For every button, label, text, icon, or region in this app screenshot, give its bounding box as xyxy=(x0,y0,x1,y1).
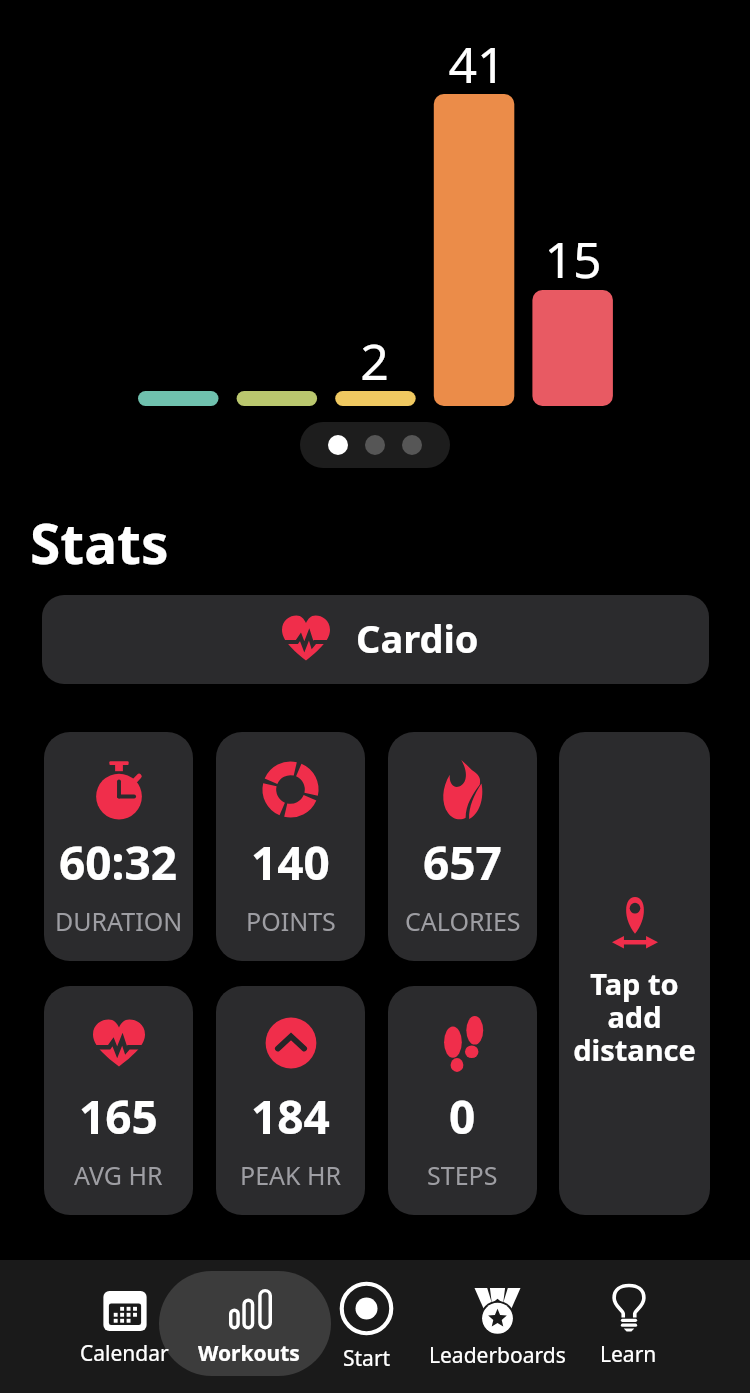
button[interactable]: Start xyxy=(276,1271,456,1376)
staticText: DURATION xyxy=(55,904,183,938)
staticText: POINTS xyxy=(246,904,336,938)
button[interactable]: Workouts xyxy=(159,1271,339,1376)
button[interactable]: 657 xyxy=(388,732,537,961)
staticText: Learn xyxy=(600,1340,657,1369)
staticText: Calendar xyxy=(80,1339,169,1368)
staticText: 165 xyxy=(79,1085,158,1148)
button[interactable]: 184 xyxy=(216,986,365,1215)
button[interactable]: Cardio xyxy=(42,595,709,684)
button[interactable]: 0 xyxy=(388,986,537,1215)
staticText: 15 xyxy=(544,225,602,293)
staticText: CALORIES xyxy=(405,904,521,938)
button[interactable]: 60:32 xyxy=(44,732,193,961)
staticText: Stats xyxy=(30,505,169,580)
button[interactable]: Calendar xyxy=(34,1271,214,1376)
staticText: Workouts xyxy=(198,1339,300,1368)
staticText: 41 xyxy=(448,30,506,98)
button[interactable]: 140 xyxy=(216,732,365,961)
staticText: Leaderboards xyxy=(429,1341,566,1370)
staticText: 657 xyxy=(423,831,502,894)
staticText: Tap to add distance xyxy=(573,964,696,1069)
staticText: Cardio xyxy=(356,612,479,664)
staticText: PEAK HR xyxy=(240,1158,342,1192)
staticText: AVG HR xyxy=(74,1158,163,1192)
button[interactable]: 165 xyxy=(44,986,193,1215)
staticText: Start xyxy=(343,1344,391,1373)
staticText: 184 xyxy=(251,1085,330,1148)
button[interactable]: Leaderboards xyxy=(407,1271,587,1376)
staticText: 60:32 xyxy=(59,831,178,894)
staticText: 2 xyxy=(360,327,389,395)
staticText: STEPS xyxy=(427,1158,498,1192)
button[interactable]: Page indicator xyxy=(300,422,450,468)
staticText: 0 xyxy=(449,1085,476,1148)
button[interactable]: Learn xyxy=(538,1271,718,1376)
button[interactable]: Tap to add distance xyxy=(559,732,710,1215)
staticText: 140 xyxy=(251,831,330,894)
